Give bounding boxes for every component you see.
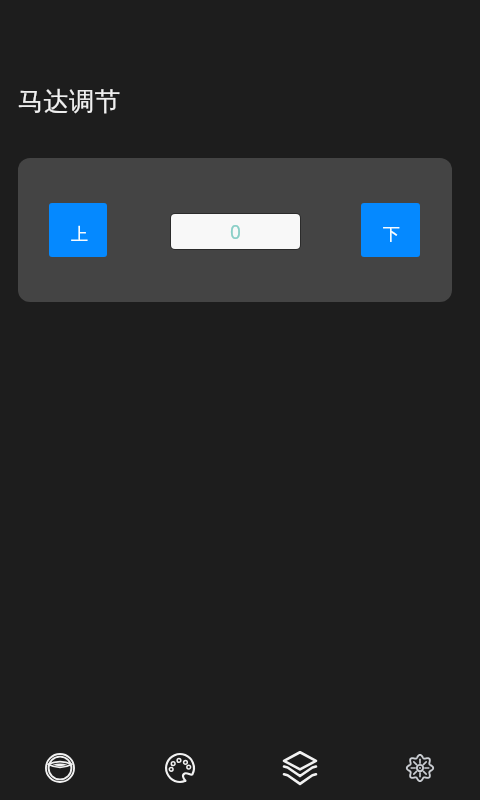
staticText: 下 <box>383 224 400 245</box>
button[interactable]: Settings <box>360 736 480 800</box>
button[interactable]: Palette <box>120 736 240 800</box>
button[interactable]: 下 <box>361 203 420 257</box>
button[interactable]: 0 <box>171 214 300 249</box>
button[interactable]: Bowl <box>0 736 120 800</box>
button[interactable]: 上 <box>49 203 107 257</box>
staticText: 马达调节 <box>18 85 120 117</box>
staticText: 0 <box>230 219 241 245</box>
staticText: 上 <box>71 224 88 245</box>
button[interactable]: Layers <box>240 736 360 800</box>
